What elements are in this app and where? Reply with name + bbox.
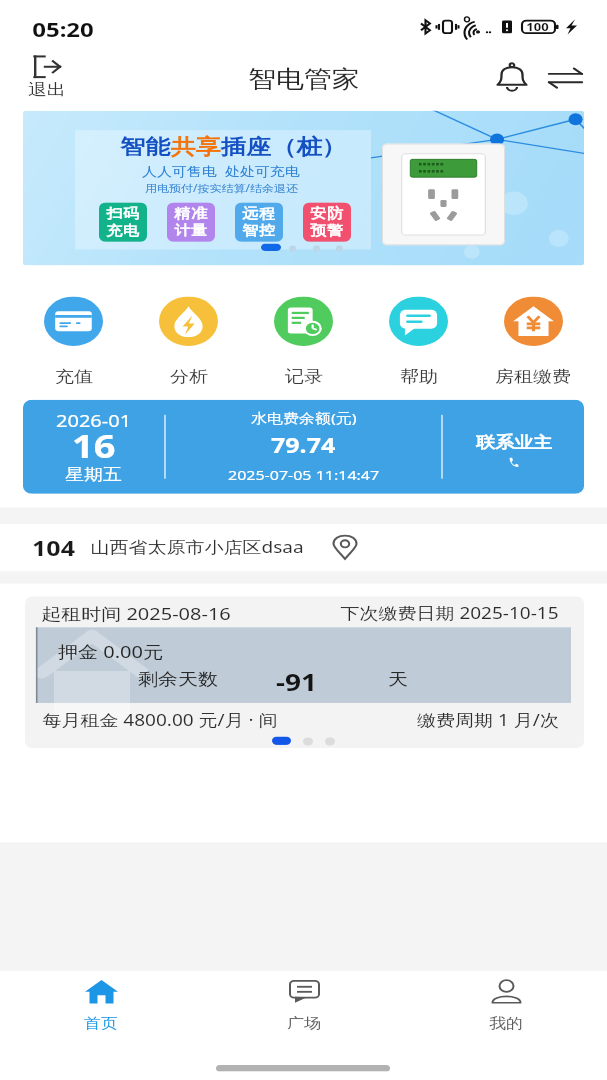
button[interactable]: 帮助 [361, 296, 475, 387]
staticText: 智能共享插座（桩） [120, 133, 347, 159]
staticText: 起租时间 2025-08-16 [41, 602, 231, 625]
staticText: 剩余天数 [138, 669, 218, 690]
button[interactable]: 我的 [461, 975, 551, 1035]
button[interactable]: 分析 [131, 296, 245, 387]
button[interactable]: 104 [0, 524, 607, 571]
staticText: 充电 [106, 223, 140, 239]
staticText: 用电预付/按实结算/结余退还 [145, 181, 298, 195]
staticText: 房租缴费 [495, 367, 571, 387]
staticText: 05:20 [32, 15, 94, 43]
staticText: 广场 [287, 1014, 321, 1032]
staticText: 充值 [55, 367, 93, 387]
staticText: 我的 [489, 1014, 523, 1032]
staticText: 帮助 [400, 367, 438, 387]
button[interactable]: 联系业主 [443, 400, 584, 468]
button[interactable]: 远程 [235, 202, 283, 242]
staticText: 分析 [170, 367, 208, 387]
button[interactable]: 2026-01 [23, 400, 584, 494]
staticText: -91 [276, 666, 317, 698]
staticText: 首页 [84, 1014, 118, 1032]
staticText: 人人可售电 处处可充电 [142, 162, 300, 179]
staticText: 智电管家 [248, 64, 360, 93]
staticText: 每月租金 4800.00 元/月 · 间 [42, 710, 278, 731]
staticText: 计量 [174, 223, 208, 239]
button[interactable]: 广场 [259, 975, 349, 1035]
staticText: 16 [72, 423, 116, 467]
staticText: 100 [526, 19, 549, 34]
button[interactable]: 记录 [246, 296, 360, 387]
button[interactable]: 安防 [303, 202, 351, 242]
staticText: 联系业主 [476, 433, 552, 453]
button[interactable]: 退出 [22, 54, 72, 102]
button[interactable]: Notifications [485, 55, 539, 101]
staticText: 水电费余额(元) [251, 409, 357, 427]
button[interactable]: 智能共享插座（桩） [23, 111, 584, 265]
button[interactable]: 精准 [167, 202, 215, 242]
staticText: 104 [32, 533, 75, 562]
staticText: 天 [388, 669, 408, 690]
staticText: 押金 0.00元 [58, 640, 163, 663]
staticText: 2025-07-05 11:14:47 [228, 466, 380, 485]
button[interactable]: 首页 [56, 975, 146, 1035]
button[interactable]: 扫码 [99, 202, 147, 242]
staticText: 预警 [310, 223, 344, 239]
staticText: 扫码 [106, 206, 140, 223]
staticText: 精准 [174, 206, 208, 223]
staticText: 安防 [310, 206, 344, 223]
staticText: 记录 [285, 367, 323, 387]
staticText: 缴费周期 1 月/次 [417, 710, 559, 731]
button[interactable]: Switch account [539, 55, 593, 101]
staticText: 退出 [28, 80, 66, 100]
staticText: 山西省太原市小店区dsaa [90, 537, 304, 558]
staticText: 星期五 [65, 464, 122, 485]
staticText: 智控 [242, 223, 276, 239]
staticText: 下次缴费日期 2025-10-15 [340, 602, 559, 624]
staticText: 79.74 [271, 431, 336, 459]
staticText: 远程 [242, 206, 276, 223]
staticText: 2026-01 [56, 409, 132, 432]
button[interactable]: 房租缴费 [476, 296, 590, 387]
button[interactable]: 起租时间 2025-08-16 [25, 596, 584, 748]
button[interactable]: 充值 [16, 296, 130, 387]
